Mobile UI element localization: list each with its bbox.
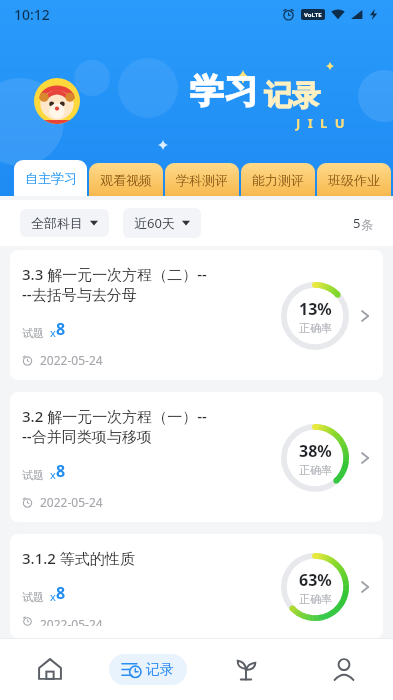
staticText: 全部科目 [31,215,83,231]
staticText: 记录 [264,78,320,113]
button[interactable]: 全部科目 [20,209,109,237]
staticText: 能力测评 [252,172,304,188]
staticText: 条 [361,217,373,232]
button[interactable]: 学科测评 [165,163,239,196]
button[interactable]: 班级作业 [317,163,391,196]
button[interactable]: 自主学习 [14,160,87,196]
button[interactable]: Profile [295,638,393,700]
staticText: 13% [299,298,332,320]
staticText: 2022-05-24 [40,494,103,510]
staticText: 正确率 [299,463,332,477]
staticText: 38% [299,440,332,462]
button[interactable]: 3.1.2 等式的性质 [10,534,383,638]
button[interactable]: Home [0,638,99,700]
button[interactable]: 3.3 解一元一次方程（二）-- [10,250,383,380]
staticText: 记录 [146,661,174,679]
other: Open detail [355,306,375,326]
staticText: 试题 [22,590,44,604]
staticText: x [50,325,56,340]
staticText: 8 [56,460,66,482]
staticText: 2022-05-24 [40,616,103,626]
staticText: 学习 [190,70,258,113]
staticText: 试题 [22,326,44,340]
staticText: J I L U [296,114,347,132]
staticText: x [50,467,56,482]
staticText: 试题 [22,468,44,482]
staticText: 10:12 [14,5,50,24]
staticText: 自主学习 [25,170,77,186]
other: Open detail [355,448,375,468]
button[interactable]: 近60天 [123,208,201,238]
staticText: 5 [353,214,361,232]
staticText: 63% [299,569,332,591]
staticText: 近60天 [134,214,175,232]
button[interactable]: Growth [197,638,295,700]
other: Open detail [355,577,375,597]
staticText: 观看视频 [100,172,152,188]
button[interactable]: 观看视频 [89,163,163,196]
staticText: VoLTE [304,11,322,19]
staticText: 3.3 解一元一次方程（二）-- [22,264,207,284]
button[interactable]: 记录 [109,654,187,685]
button[interactable]: 能力测评 [241,163,315,196]
staticText: 3.1.2 等式的性质 [22,548,135,568]
button[interactable]: 3.2 解一元一次方程（一）-- [10,392,383,522]
staticText: 3.2 解一元一次方程（一）-- [22,406,207,426]
staticText: --合并同类项与移项 [22,426,152,446]
staticText: --去括号与去分母 [22,284,137,304]
staticText: 学科测评 [176,172,228,188]
staticText: 8 [56,318,66,340]
staticText: 正确率 [299,592,332,606]
staticText: 正确率 [299,321,332,335]
button[interactable]: Avatar [34,78,80,124]
staticText: x [50,589,56,604]
staticText: 2022-05-24 [40,352,103,368]
staticText: 班级作业 [328,172,380,188]
staticText: 8 [56,582,66,604]
